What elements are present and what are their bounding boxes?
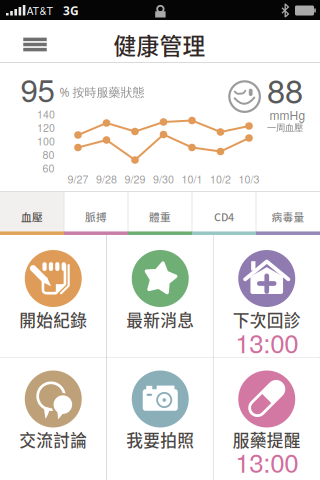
staticText: 140 [37,106,55,122]
staticText: 9/27 [67,171,88,187]
staticText: 80 [42,147,54,162]
staticText: 9/28 [96,171,117,187]
button[interactable]: 服藥提醒 [214,358,319,480]
staticText: 60 [42,160,54,176]
staticText: 10/2 [210,171,231,187]
staticText: 開始紀錄 [19,307,87,331]
staticText: 120 [37,120,55,135]
button[interactable]: 體重 [128,192,192,235]
staticText: % 按時服藥狀態 [59,84,144,100]
staticText: 95 [20,66,54,111]
staticText: 體重 [149,209,171,224]
staticText: 10/1 [181,171,202,187]
staticText: 交流討論 [19,427,87,451]
staticText: 13:00 [235,323,298,361]
staticText: 服藥提醒 [233,427,301,451]
button[interactable]: 脈搏 [64,192,128,235]
staticText: 最新消息 [126,307,194,331]
staticText: 13:00 [235,443,298,480]
button[interactable]: 開始紀錄 [0,235,106,357]
staticText: 我要拍照 [126,427,194,451]
staticText: 病毒量 [271,209,304,224]
button[interactable]: 血壓 [0,192,64,235]
staticText: 下次回診 [233,307,301,331]
button[interactable]: 交流討論 [0,358,106,480]
staticText: 一周血壓 [267,122,303,134]
staticText: CD4 [214,209,234,224]
staticText: 100 [37,133,55,149]
staticText: AT&T [26,3,53,18]
button[interactable]: 病毒量 [256,192,320,235]
staticText: 10/3 [238,171,259,187]
staticText: 健康管理 [113,28,205,61]
staticText: 9/30 [153,171,174,187]
button[interactable]: 我要拍照 [107,358,213,480]
button[interactable]: 下次回診 [214,235,319,357]
button[interactable]: 最新消息 [107,235,213,357]
staticText: 88 [267,66,303,113]
staticText: mmHg [269,106,305,123]
staticText: 3G [63,2,79,19]
staticText: 血壓 [21,209,43,224]
staticText: 9/29 [124,171,145,187]
button[interactable]: CD4 [192,192,256,235]
button[interactable]: Menu [13,26,57,62]
staticText: 脈搏 [85,209,107,224]
